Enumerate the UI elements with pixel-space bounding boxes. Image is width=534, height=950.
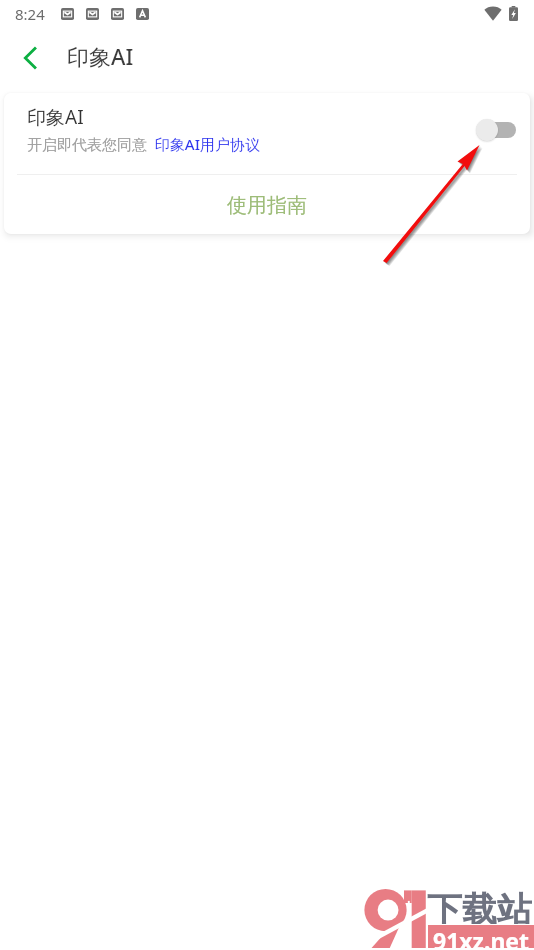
button[interactable]: Enable 印象AI	[475, 112, 519, 148]
staticText: 91xz.net	[433, 925, 530, 948]
button[interactable]: 印象AI	[4, 93, 530, 174]
staticText: 使用指南	[227, 193, 307, 218]
staticText: 8:24	[15, 4, 45, 24]
staticText: 印象AI	[27, 104, 84, 130]
button[interactable]: 使用指南	[4, 175, 530, 234]
staticText: 开启即代表您同意 印象AI用户协议	[27, 134, 260, 154]
button[interactable]: Back	[10, 38, 50, 78]
staticText: 印象AI	[67, 41, 134, 71]
staticText: 下载站	[427, 888, 532, 924]
